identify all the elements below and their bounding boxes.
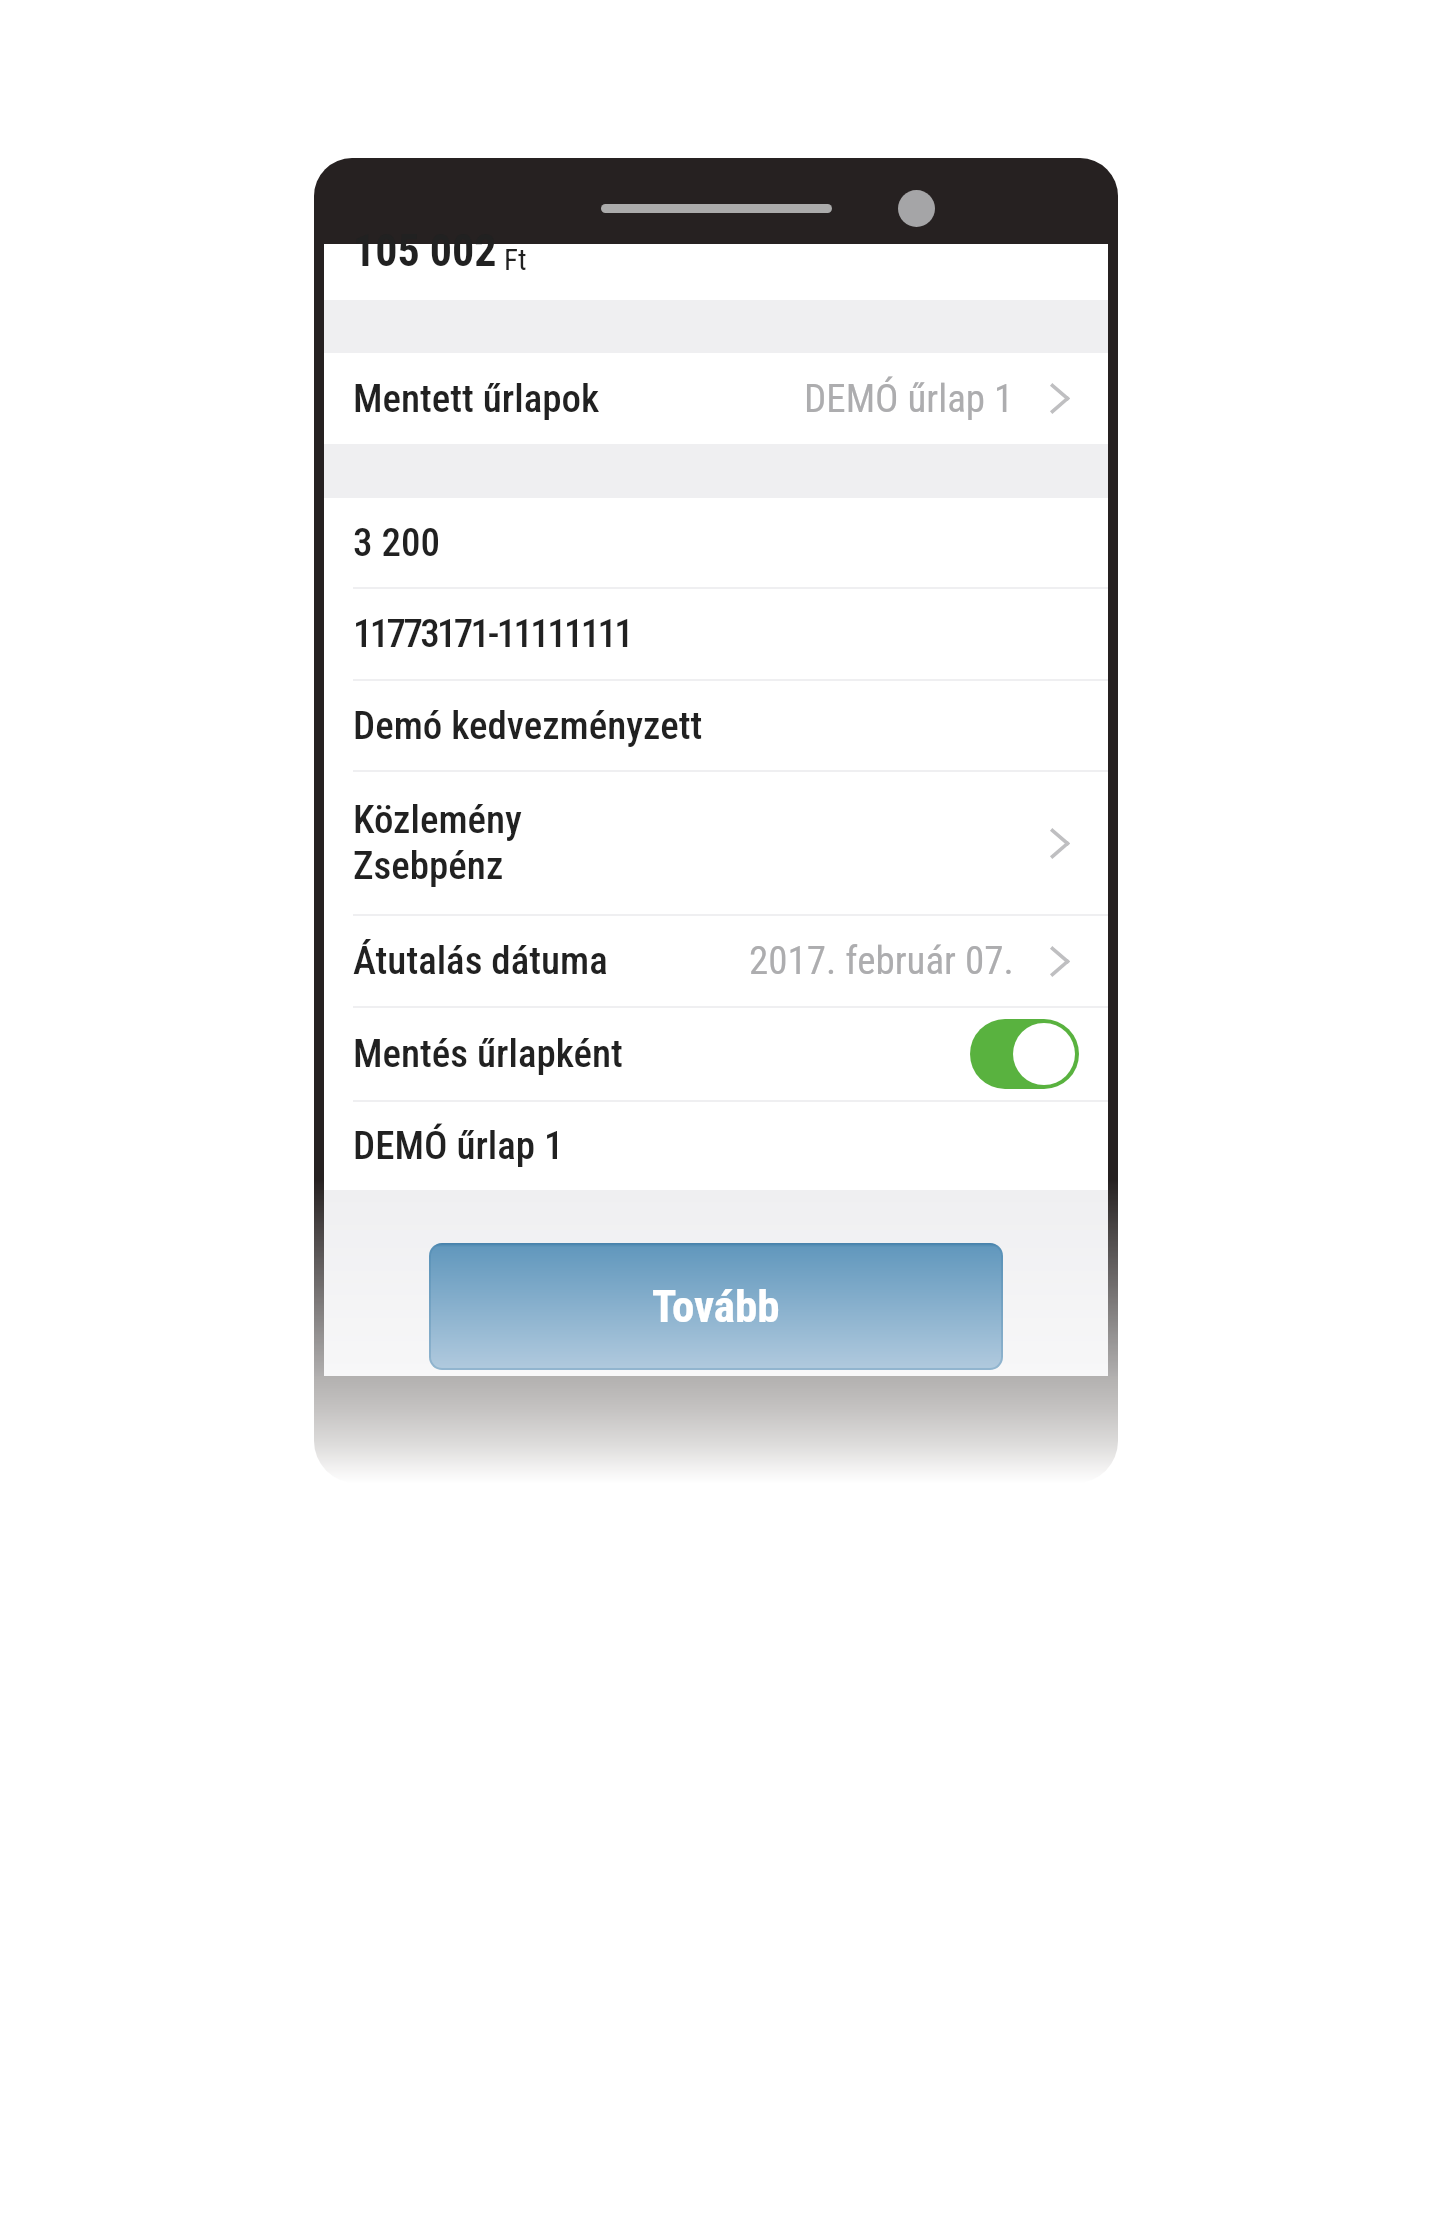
button[interactable]: Átutalás dátuma (324, 916, 1108, 1006)
button[interactable]: Mentett űrlapok (324, 353, 1108, 444)
button[interactable]: Mentés űrlapként (324, 1008, 1108, 1100)
staticText: Tovább (652, 1280, 780, 1333)
staticText: Mentés űrlapként (353, 1031, 623, 1077)
staticText: DEMÓ űrlap 1 (353, 1123, 564, 1169)
staticText: Zsebpénz (353, 843, 504, 889)
button[interactable]: Mentés űrlapként kapcsoló, bekapcsolva (970, 1019, 1079, 1089)
staticText: DEMÓ űrlap 1 (804, 376, 1014, 422)
button[interactable]: DEMÓ űrlap 1 (324, 1102, 1108, 1190)
staticText: Átutalás dátuma (353, 938, 608, 984)
button[interactable]: 3 200 (324, 498, 1108, 587)
button[interactable]: Közlemény (324, 772, 1108, 914)
staticText: 11773171-11111111 (353, 611, 632, 657)
staticText: 2017. február 07. (749, 938, 1014, 984)
button[interactable]: 11773171-11111111 (324, 589, 1108, 679)
staticText: Ft (504, 243, 527, 277)
staticText: Demó kedvezményzett (353, 703, 703, 749)
staticText: Mentett űrlapok (353, 376, 600, 422)
button[interactable]: Demó kedvezményzett (324, 681, 1108, 770)
button[interactable]: Tovább (429, 1243, 1003, 1370)
staticText: 105 002 (353, 225, 497, 277)
staticText: 3 200 (353, 520, 440, 566)
staticText: Közlemény (353, 797, 522, 843)
